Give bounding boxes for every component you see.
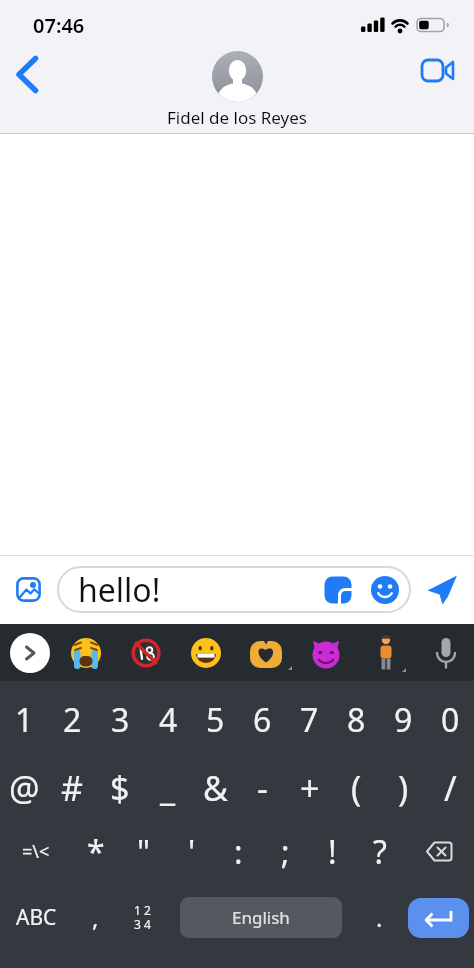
staticText: =\< [22,839,50,864]
button[interactable]: 1 2 3 4 [119,884,166,951]
button[interactable] [237,624,296,681]
staticText: _ [160,765,176,811]
button[interactable]: @ [0,754,48,821]
staticText: 2 [63,698,82,742]
button[interactable]: 9 [380,686,427,754]
staticText: ABC [16,903,57,932]
button[interactable] [296,624,355,681]
button[interactable]: ; [262,818,309,885]
button[interactable]: / [427,754,474,821]
button[interactable] [119,624,178,681]
button[interactable]: 1 [0,686,48,754]
staticText: ( [351,765,362,811]
button[interactable]: " [120,818,168,885]
button[interactable]: 7 [286,686,333,754]
staticText: ; [281,830,290,874]
button[interactable]: , [72,884,119,951]
staticText: " [137,830,151,874]
staticText: - [257,765,268,811]
staticText: # [61,765,83,811]
button[interactable] [0,44,44,104]
staticText: 4 [159,698,178,742]
staticText: : [234,830,243,874]
button[interactable] [60,624,119,681]
staticText: 5 [206,698,225,742]
button[interactable]: English [180,897,342,938]
button[interactable] [324,576,352,604]
staticText: 1 2 3 4 [134,902,151,933]
staticText: + [300,765,320,811]
button[interactable] [10,571,46,607]
staticText: 0 [441,698,460,742]
button[interactable]: : [215,818,262,885]
button[interactable] [355,624,414,681]
button[interactable]: 3 [96,686,144,754]
staticText: & [203,765,228,811]
button[interactable]: & [192,754,239,821]
staticText: @ [9,765,40,811]
staticText: 9 [394,698,413,742]
button[interactable] [414,624,473,681]
button[interactable]: ABC [0,884,72,951]
button[interactable] [408,898,469,938]
button[interactable] [414,44,474,94]
button[interactable] [403,818,474,885]
staticText: , [92,901,99,934]
staticText: 6 [253,698,272,742]
button[interactable]: ! [309,818,356,885]
button[interactable]: 2 [48,686,96,754]
button[interactable]: ) [380,754,427,821]
staticText: hello! [78,568,161,612]
button[interactable]: # [48,754,96,821]
button[interactable]: 4 [144,686,192,754]
button[interactable] [371,576,399,604]
button[interactable]: =\< [0,818,72,885]
staticText: ) [398,765,409,811]
button[interactable] [178,624,237,681]
button[interactable]: 5 [192,686,239,754]
button[interactable]: 8 [333,686,380,754]
staticText: * [87,830,105,874]
button[interactable]: 0 [427,686,474,754]
staticText: 7 [300,698,319,742]
staticText: 07:46 [33,12,85,39]
button[interactable]: * [72,818,120,885]
button[interactable]: ( [333,754,380,821]
button[interactable]: ' [168,818,215,885]
staticText: / [444,765,457,811]
button[interactable]: + [286,754,333,821]
button[interactable]: - [239,754,286,821]
staticText: ? [373,830,387,874]
staticText: 1 [15,698,34,742]
button[interactable]: hello! [57,566,411,613]
staticText: 8 [347,698,366,742]
button[interactable]: ? [356,818,403,885]
button[interactable] [212,51,263,102]
staticText: 3 [111,698,130,742]
staticText: ! [328,830,337,874]
button[interactable]: $ [96,754,144,821]
button[interactable] [10,633,50,673]
button[interactable]: _ [144,754,192,821]
staticText: ' [188,830,196,874]
staticText: Fidel de los Reyes [167,106,307,129]
staticText: English [232,906,290,929]
staticText: . [376,901,383,934]
staticText: $ [110,765,130,811]
button[interactable]: 6 [239,686,286,754]
button[interactable]: . [356,884,403,951]
button[interactable] [420,568,464,612]
